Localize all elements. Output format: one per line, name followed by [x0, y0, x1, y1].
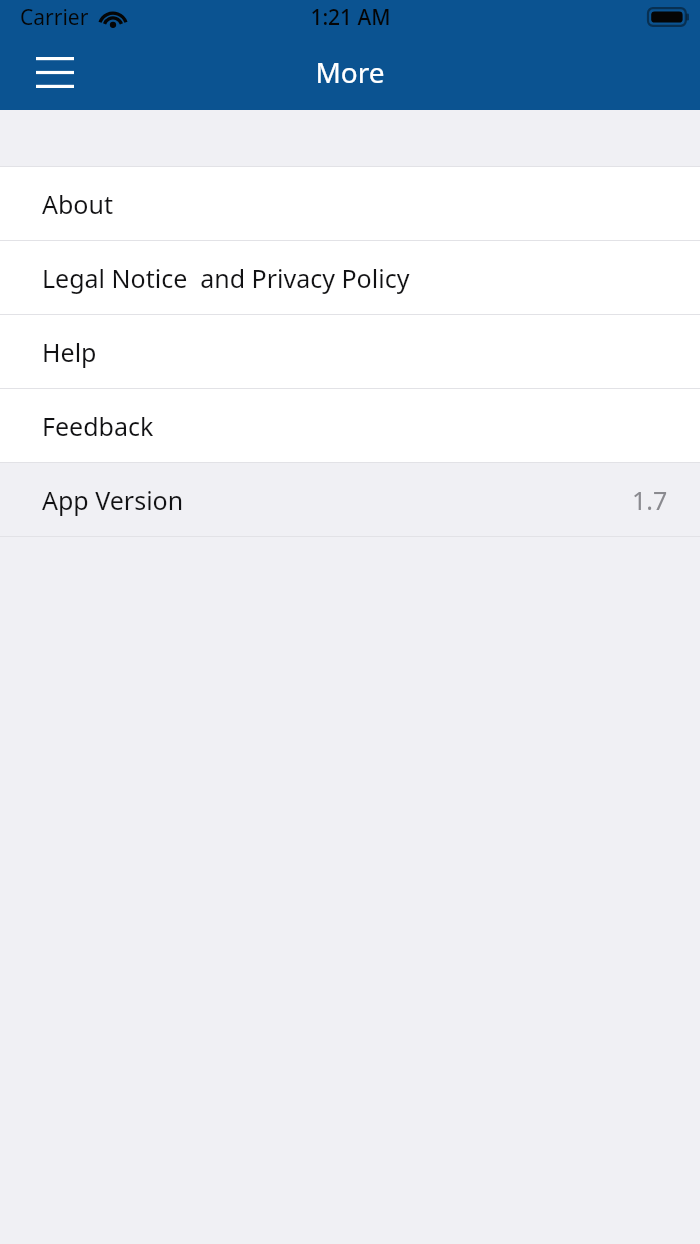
staticText: Legal Notice and Privacy Policy [42, 261, 410, 295]
staticText: 1.7 [632, 483, 668, 517]
staticText: Help [42, 335, 97, 369]
button[interactable]: App Version [0, 463, 700, 536]
staticText: 1:21 AM [310, 3, 391, 32]
button[interactable]: Legal Notice and Privacy Policy [0, 241, 700, 314]
button[interactable]: Help [0, 315, 700, 388]
staticText: More [315, 53, 385, 91]
button[interactable]: About [0, 167, 700, 240]
staticText: About [42, 187, 113, 221]
staticText: Feedback [42, 409, 154, 443]
staticText: Carrier [20, 3, 89, 32]
button[interactable]: Feedback [0, 389, 700, 462]
staticText: App Version [42, 483, 184, 517]
button[interactable]: Menu [22, 44, 88, 100]
